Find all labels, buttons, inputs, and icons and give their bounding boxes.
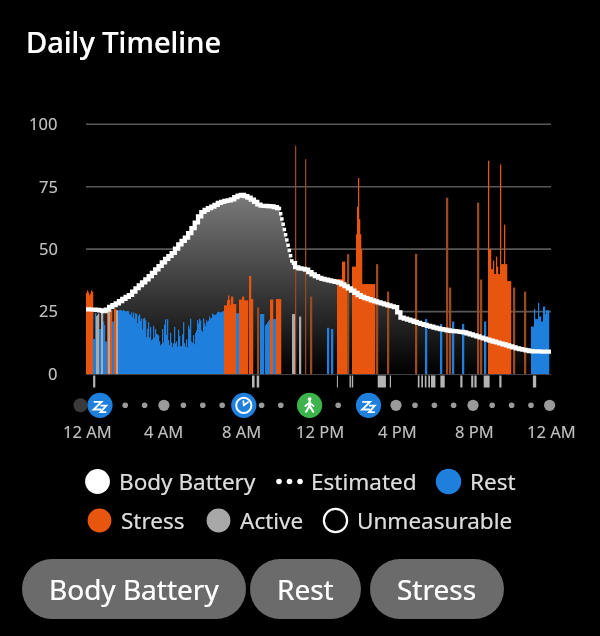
staticText: 12 AM [63, 420, 112, 442]
staticText: 8 AM [222, 420, 262, 442]
staticText: Rest [470, 466, 516, 497]
staticText: 4 AM [144, 420, 184, 442]
staticText: Active [240, 505, 304, 536]
staticText: Rest [277, 570, 334, 608]
staticText: 25 [39, 299, 58, 321]
staticText: Stress [121, 505, 185, 536]
button[interactable]: Stress [87, 505, 185, 536]
button[interactable]: Body Battery [85, 466, 256, 497]
button[interactable]: Stress [370, 559, 504, 619]
button[interactable]: Rest [436, 466, 516, 497]
staticText: 75 [39, 175, 58, 197]
staticText: Body Battery [49, 570, 219, 608]
button[interactable]: Estimated [277, 466, 417, 497]
staticText: 12 AM [527, 420, 576, 442]
button[interactable]: Unmeasurable [323, 505, 513, 536]
staticText: 0 [48, 362, 58, 384]
staticText: Daily Timeline [26, 22, 222, 61]
staticText: 4 PM [378, 420, 417, 442]
staticText: 50 [39, 237, 58, 259]
button[interactable]: Active [206, 505, 304, 536]
staticText: Body Battery [119, 466, 256, 497]
staticText: 100 [29, 112, 58, 134]
staticText: Estimated [311, 466, 417, 497]
staticText: 12 PM [296, 420, 345, 442]
staticText: Unmeasurable [357, 505, 513, 536]
staticText: Stress [397, 570, 477, 608]
button[interactable]: Body Battery [22, 559, 246, 619]
staticText: 8 PM [455, 420, 494, 442]
button[interactable]: Rest [250, 559, 361, 619]
